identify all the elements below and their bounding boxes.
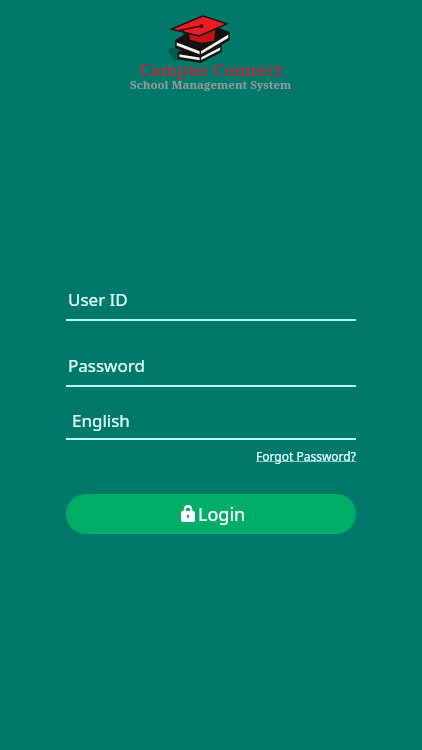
other: Campus Connect logo — [167, 13, 235, 65]
button[interactable]: User ID — [66, 288, 356, 321]
button[interactable]: Lock — [66, 494, 356, 534]
staticText: Login — [198, 502, 246, 527]
other: Lock — [181, 505, 195, 522]
staticText: Campus Connect — [139, 58, 283, 81]
button[interactable]: Password — [66, 354, 356, 387]
button[interactable]: Forgot Password? — [256, 448, 356, 464]
button[interactable]: English — [66, 409, 356, 440]
staticText: School Management System — [130, 77, 292, 93]
staticText: User ID — [68, 288, 128, 311]
staticText: Forgot Password? — [256, 448, 356, 464]
staticText: Password — [68, 354, 145, 377]
staticText: English — [72, 409, 130, 432]
